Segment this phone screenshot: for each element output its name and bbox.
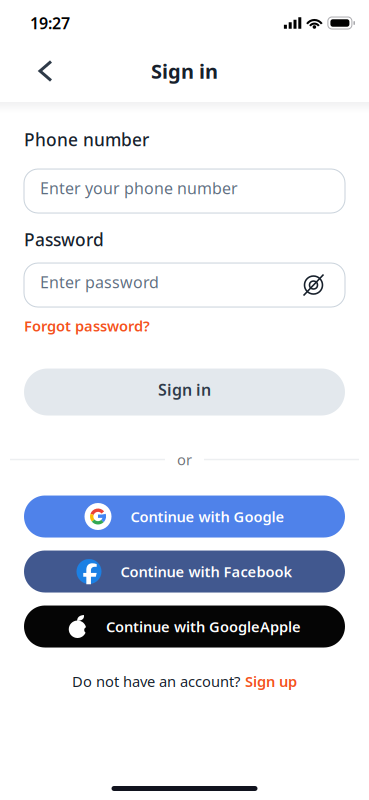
staticText: Forgot password? <box>24 316 150 335</box>
button[interactable]: Show password <box>303 273 329 296</box>
staticText: Sign in <box>151 58 218 84</box>
button[interactable]: Continue with GoogleApple <box>24 605 345 647</box>
staticText: or <box>177 450 192 469</box>
staticText: Enter password <box>40 271 159 293</box>
staticText: 19:27 <box>30 12 70 34</box>
button[interactable]: Forgot password? <box>24 316 150 335</box>
button[interactable]: Sign in <box>24 368 345 415</box>
staticText: Continue with Facebook <box>120 562 292 581</box>
staticText: Enter your phone number <box>40 177 238 199</box>
button[interactable]: Back <box>0 47 51 94</box>
staticText: Sign up <box>245 671 297 691</box>
staticText: Continue with GoogleApple <box>106 617 301 636</box>
staticText: Password <box>24 228 104 251</box>
staticText: Do not have an account? <box>72 671 240 691</box>
button[interactable]: Sign up <box>245 671 297 691</box>
button[interactable]: Continue with Facebook <box>24 550 345 592</box>
staticText: Sign in <box>158 379 211 400</box>
staticText: Continue with Google <box>130 507 284 526</box>
button[interactable]: Continue with Google <box>24 495 345 537</box>
staticText: Phone number <box>24 128 149 151</box>
